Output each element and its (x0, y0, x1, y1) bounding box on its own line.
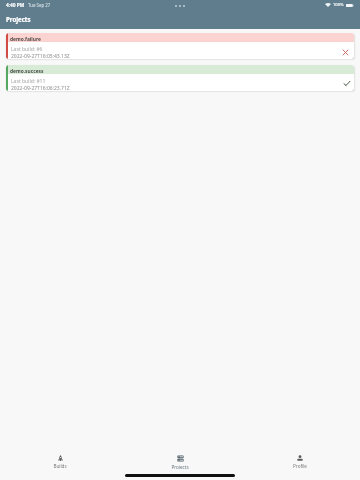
staticText: Last build: #6 (11, 46, 43, 53)
staticText: 4:40 PM (6, 2, 25, 9)
staticText: 2022-09-27T16:06:23.71Z (11, 85, 70, 91)
button[interactable]: demo.success (6, 65, 354, 91)
staticText: Projects (6, 15, 31, 23)
other: Build failed (343, 50, 348, 55)
button[interactable]: Projects (120, 449, 240, 471)
staticText: 100% (333, 2, 344, 8)
button[interactable]: Builds (0, 449, 120, 471)
button[interactable]: demo.failure (6, 33, 354, 59)
staticText: Tue Sep 27 (28, 2, 51, 8)
staticText: demo.failure (10, 36, 41, 43)
staticText: demo.success (10, 68, 44, 75)
staticText: Last build: #11 (11, 78, 46, 85)
staticText: Projects (171, 464, 189, 469)
staticText: Builds (53, 463, 67, 469)
staticText: 2022-09-27T16:05:43.13Z (11, 53, 70, 59)
other: Build succeeded (344, 81, 350, 87)
button[interactable]: Profile (240, 449, 360, 471)
staticText: Profile (293, 463, 307, 469)
